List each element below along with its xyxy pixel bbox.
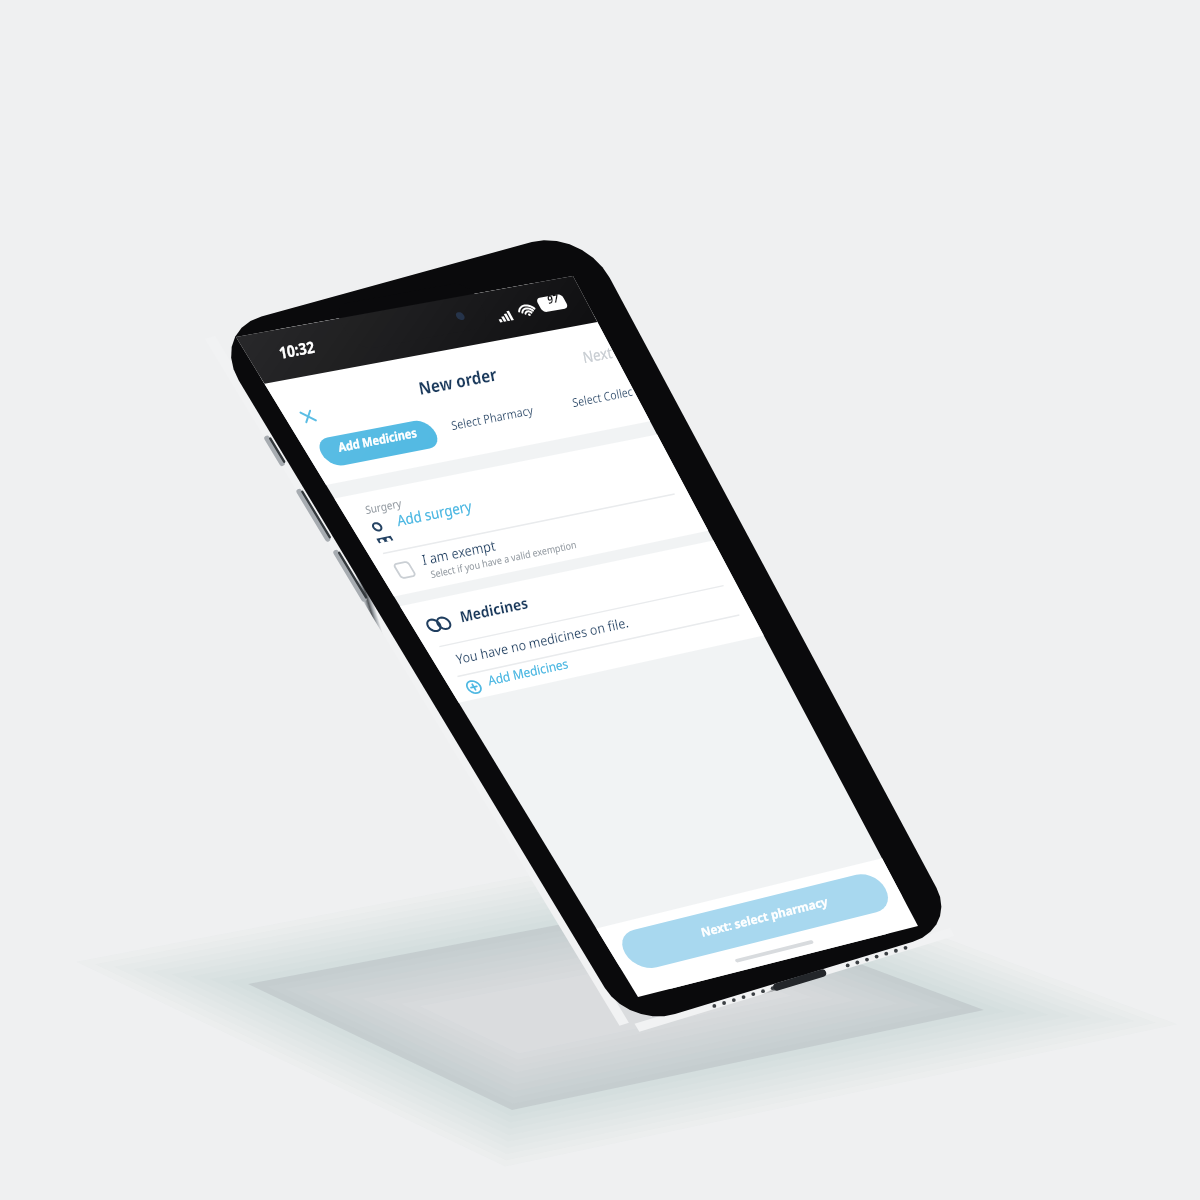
button[interactable]: Next — [581, 341, 614, 368]
button[interactable]: Select Collec — [571, 383, 634, 411]
staticText: 10:32 — [277, 335, 316, 363]
button[interactable]: Add surgery — [395, 495, 473, 530]
staticText: You have no medicines on file. — [454, 613, 630, 668]
button[interactable]: Close — [291, 408, 329, 426]
button[interactable]: Add Medicines — [486, 654, 570, 689]
button[interactable]: Select Pharmacy — [450, 402, 535, 434]
staticText: New order — [416, 362, 499, 400]
button[interactable]: Add Medicines — [337, 424, 419, 456]
button[interactable]: Next: select pharmacy — [699, 892, 830, 940]
staticText: Select if you have a valid exemption — [429, 538, 578, 581]
staticText: Surgery — [364, 495, 403, 518]
button[interactable]: I am exempt — [420, 535, 497, 569]
staticText: 97 — [546, 290, 561, 308]
staticText: Medicines — [458, 592, 530, 626]
